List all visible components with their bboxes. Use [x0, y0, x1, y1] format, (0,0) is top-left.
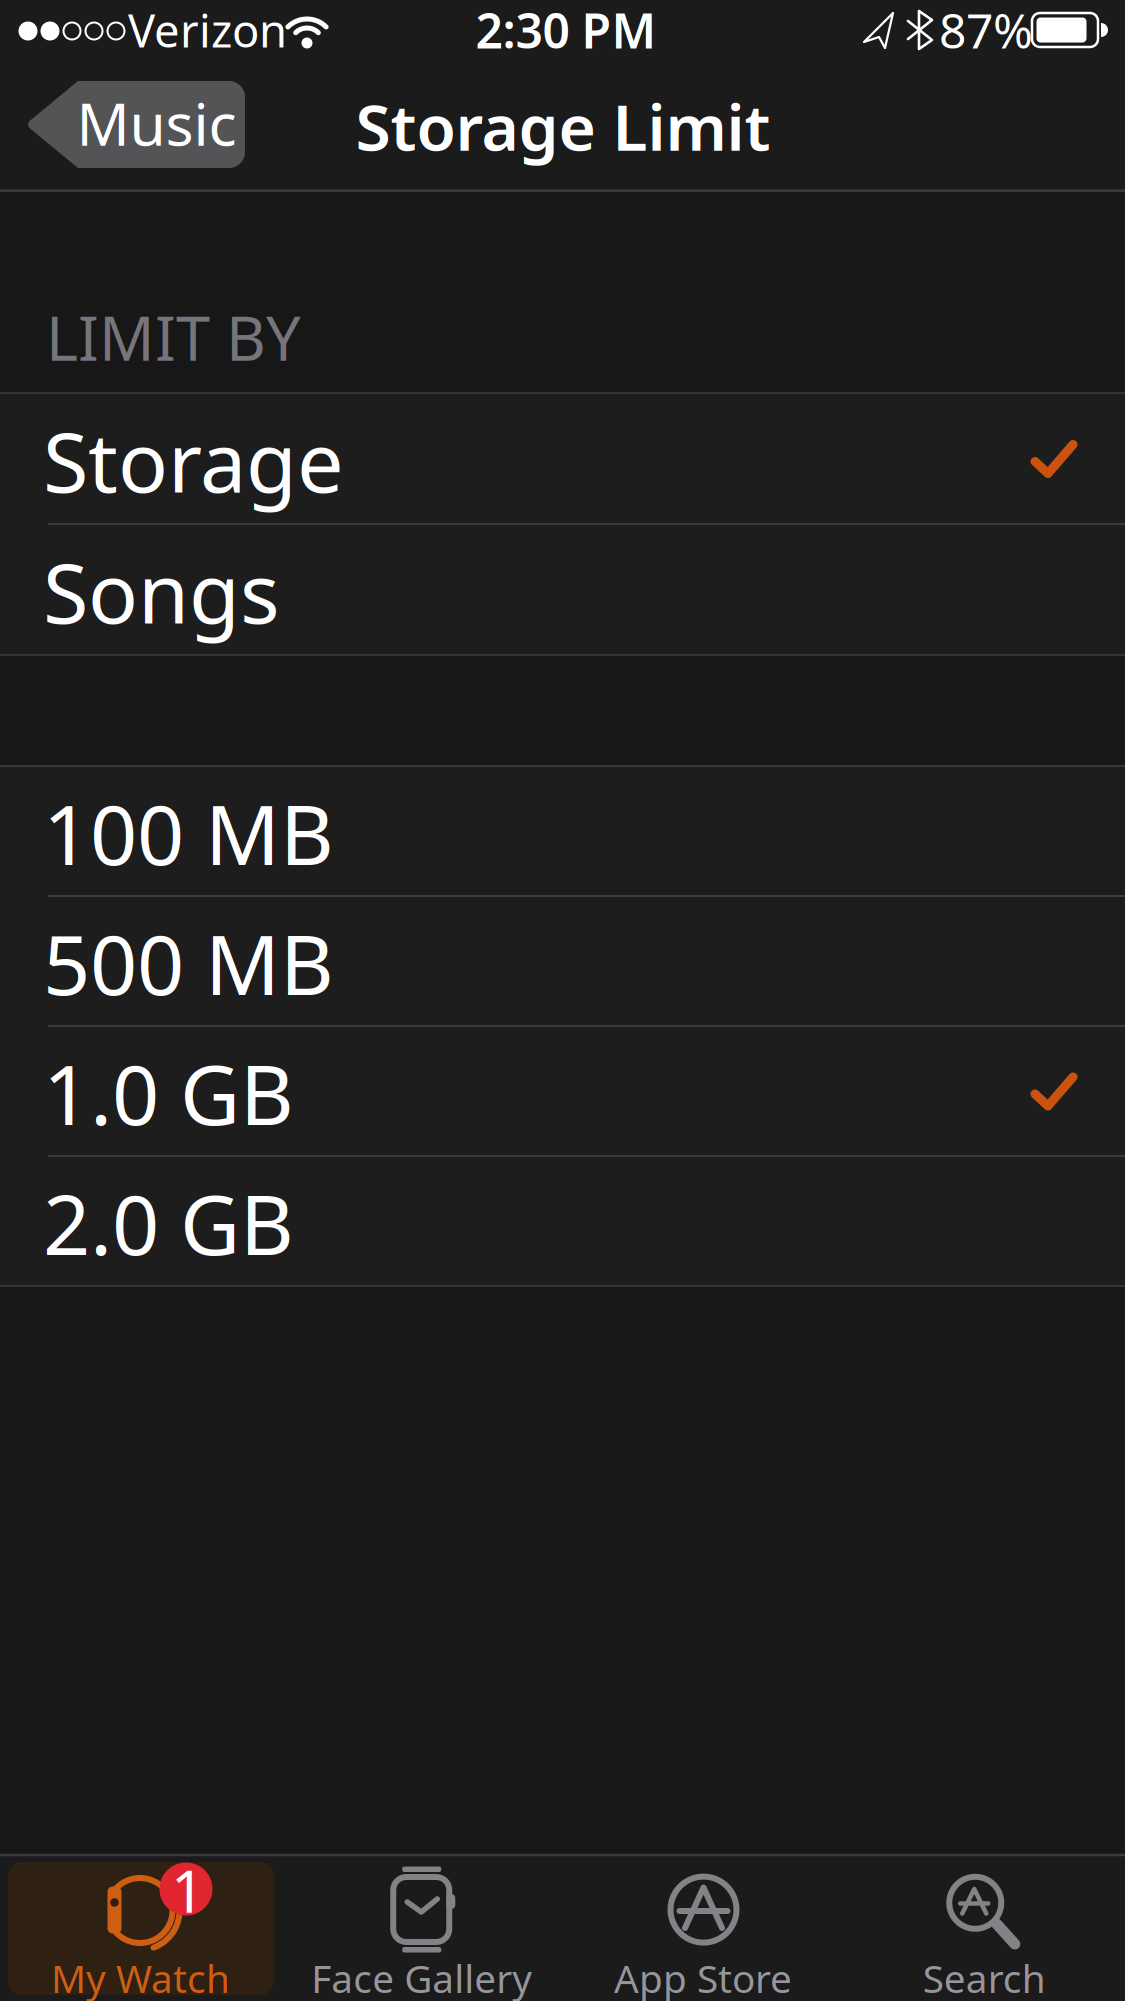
- button[interactable]: App Store: [562, 1854, 844, 2001]
- staticText: Search: [923, 1952, 1046, 2001]
- staticText: 100 MB: [43, 778, 334, 888]
- staticText: Storage Limit: [355, 83, 770, 168]
- button[interactable]: Back to Music: [24, 81, 245, 168]
- staticText: Face Gallery: [311, 1952, 532, 2001]
- staticText: Music: [76, 84, 236, 162]
- button[interactable]: 500 MB: [0, 896, 1125, 1026]
- staticText: 2.0 GB: [43, 1168, 294, 1278]
- button[interactable]: Face Gallery: [281, 1854, 562, 2001]
- staticText: 1: [171, 1851, 205, 1929]
- button[interactable]: 2.0 GB: [0, 1156, 1125, 1286]
- staticText: Storage: [43, 406, 344, 515]
- staticText: 2:30 PM: [475, 0, 656, 62]
- button[interactable]: 1.0 GB: [0, 1026, 1125, 1156]
- staticText: 1.0 GB: [43, 1038, 294, 1148]
- button[interactable]: Storage: [0, 393, 1125, 524]
- button[interactable]: 100 MB: [0, 766, 1125, 896]
- button[interactable]: Search: [844, 1854, 1125, 2001]
- staticText: Verizon: [128, 0, 287, 60]
- staticText: 500 MB: [43, 908, 334, 1018]
- staticText: 87%: [939, 0, 1033, 62]
- button[interactable]: 1: [0, 1854, 281, 2001]
- staticText: LIMIT BY: [46, 296, 301, 378]
- staticText: Songs: [43, 537, 280, 646]
- staticText: App Store: [614, 1952, 792, 2001]
- button[interactable]: Songs: [0, 524, 1125, 655]
- staticText: My Watch: [51, 1952, 230, 2001]
